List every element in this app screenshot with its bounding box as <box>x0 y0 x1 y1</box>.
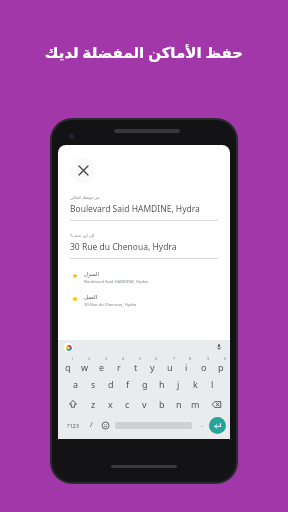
staticText: n <box>176 398 182 410</box>
button[interactable]: Close <box>70 157 96 183</box>
button[interactable]: k <box>187 374 204 394</box>
staticText: b <box>159 398 165 410</box>
staticText: a <box>73 378 79 390</box>
button[interactable]: ?123 <box>62 415 84 435</box>
staticText: 30 Rue du Chenoua, Hydra <box>84 302 137 308</box>
button[interactable]: 4 <box>110 354 127 374</box>
staticText: 6 <box>155 356 158 361</box>
staticText: h <box>159 378 165 390</box>
staticText: u <box>167 361 173 373</box>
staticText: 8 <box>189 356 192 361</box>
staticText: i <box>185 361 188 373</box>
button[interactable]: 8 <box>178 354 195 374</box>
button[interactable]: إلى أين تذهب؟ <box>58 233 230 259</box>
button[interactable]: 3 <box>93 354 110 374</box>
staticText: حفظ الأماكن المفضلة لديك <box>16 42 272 62</box>
staticText: 5 <box>139 356 142 361</box>
button[interactable]: . <box>195 415 209 435</box>
staticText: ?123 <box>67 422 79 429</box>
button[interactable]: Shift <box>60 394 85 414</box>
staticText: المنزل <box>84 271 100 277</box>
button[interactable]: j <box>170 374 187 394</box>
button[interactable]: Emoji <box>98 415 112 435</box>
button[interactable]: n <box>170 394 187 414</box>
staticText: 30 Rue du Chenoua, Hydra <box>70 241 177 253</box>
staticText: k <box>193 378 198 390</box>
staticText: 7 <box>173 356 176 361</box>
staticText: x <box>108 398 113 410</box>
staticText: c <box>125 398 130 410</box>
button[interactable]: z <box>85 394 102 414</box>
button[interactable]: b <box>153 394 170 414</box>
button[interactable]: c <box>119 394 136 414</box>
button[interactable]: x <box>102 394 119 414</box>
staticText: إلى أين تذهب؟ <box>70 233 95 238</box>
staticText: y <box>150 361 155 373</box>
button[interactable]: / <box>84 415 98 435</box>
staticText: l <box>211 378 214 390</box>
staticText: j <box>177 378 180 390</box>
staticText: 4 <box>122 356 125 361</box>
staticText: . <box>201 420 203 430</box>
staticText: q <box>65 361 71 373</box>
staticText: f <box>126 378 130 390</box>
staticText: 1 <box>71 356 74 361</box>
staticText: العمل <box>84 294 98 300</box>
button[interactable]: Backspace <box>204 394 228 414</box>
staticText: g <box>142 378 148 390</box>
staticText: w <box>81 361 89 373</box>
staticText: t <box>134 361 138 373</box>
button[interactable]: العمل <box>58 294 230 308</box>
staticText: v <box>142 398 147 410</box>
staticText: 3 <box>105 356 108 361</box>
staticText: Boulevard Said HAMDINE, Hydra <box>84 279 148 285</box>
button[interactable]: Google <box>64 343 73 352</box>
staticText: s <box>91 378 96 390</box>
staticText: o <box>201 361 207 373</box>
button[interactable]: من موقعك الحالي <box>58 195 230 221</box>
staticText: 9 <box>207 356 210 361</box>
button[interactable]: 9 <box>195 354 212 374</box>
button[interactable]: Enter <box>209 417 226 434</box>
staticText: / <box>90 420 93 430</box>
button[interactable]: m <box>187 394 204 414</box>
staticText: من موقعك الحالي <box>70 195 100 200</box>
button[interactable]: 6 <box>144 354 161 374</box>
staticText: r <box>117 361 121 373</box>
button[interactable]: v <box>136 394 153 414</box>
button[interactable]: 1 <box>59 354 76 374</box>
staticText: m <box>191 398 200 410</box>
button[interactable]: 5 <box>127 354 144 374</box>
button[interactable]: المنزل <box>58 271 230 285</box>
button[interactable]: d <box>102 374 119 394</box>
staticText: p <box>218 361 224 373</box>
staticText: e <box>99 361 105 373</box>
button[interactable]: a <box>67 374 85 394</box>
button[interactable]: 7 <box>161 354 178 374</box>
staticText: 0 <box>224 356 227 361</box>
button[interactable]: f <box>119 374 136 394</box>
button[interactable]: 0 <box>212 354 229 374</box>
button[interactable]: s <box>85 374 102 394</box>
button[interactable]: h <box>153 374 170 394</box>
staticText: d <box>108 378 114 390</box>
button[interactable]: 2 <box>76 354 93 374</box>
button[interactable]: Voice input <box>214 342 224 352</box>
staticText: z <box>91 398 96 410</box>
button[interactable]: l <box>204 374 221 394</box>
button[interactable]: g <box>136 374 153 394</box>
staticText: Boulevard Said HAMDINE, Hydra <box>70 203 200 215</box>
staticText: 2 <box>88 356 91 361</box>
